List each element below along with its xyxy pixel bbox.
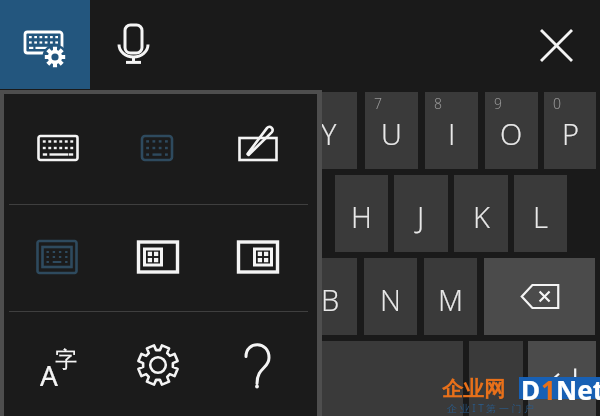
staticText: Y	[321, 114, 337, 153]
staticText: 8	[434, 94, 442, 113]
button[interactable]: N	[364, 258, 417, 335]
staticText: H	[351, 197, 372, 236]
button[interactable]: K	[454, 175, 508, 252]
button[interactable]: Touch keyboard	[10, 108, 106, 188]
staticText: N	[380, 280, 401, 319]
staticText: P	[562, 114, 579, 153]
button[interactable]: B	[304, 258, 357, 335]
button[interactable]: Backspace	[484, 258, 595, 335]
button[interactable]: Space	[300, 341, 463, 416]
staticText: B	[321, 280, 340, 319]
button[interactable]: Symbols	[469, 341, 523, 416]
staticText: 7	[374, 94, 382, 113]
button[interactable]: Handwriting	[210, 107, 306, 187]
button[interactable]: Language	[11, 327, 107, 407]
staticText: 企业网	[442, 376, 505, 402]
button[interactable]: J	[394, 175, 448, 252]
button[interactable]: Y	[300, 92, 357, 169]
button[interactable]: Dock left	[110, 217, 206, 297]
button[interactable]: Dock right	[210, 217, 306, 297]
staticText: Net	[556, 372, 600, 407]
staticText: M	[438, 280, 464, 319]
button[interactable]: Settings	[110, 325, 206, 405]
button[interactable]: Enter	[528, 341, 596, 416]
staticText: O	[500, 114, 523, 153]
staticText: 9	[494, 94, 502, 113]
button[interactable]: 9	[485, 92, 538, 169]
staticText: J	[417, 197, 425, 236]
button[interactable]: 8	[425, 92, 478, 169]
button[interactable]: 7	[365, 92, 418, 169]
button[interactable]: Thumb keyboard	[109, 108, 205, 188]
button[interactable]: Help	[210, 325, 306, 405]
button[interactable]: M	[424, 258, 477, 335]
staticText: 企 业 I T 第 一 门 户	[447, 401, 535, 415]
staticText: K	[473, 197, 490, 236]
staticText: U	[381, 114, 402, 153]
staticText: L	[533, 197, 548, 236]
staticText: I	[448, 114, 456, 153]
button[interactable]: Close	[516, 0, 600, 89]
staticText: 1	[541, 372, 556, 407]
button[interactable]: Keyboard settings	[0, 0, 90, 89]
button[interactable]: Voice input	[90, 0, 180, 89]
button[interactable]: Floating keyboard	[9, 217, 105, 297]
staticText: 字	[55, 346, 77, 374]
button[interactable]: L	[514, 175, 567, 252]
button[interactable]: 0	[544, 92, 596, 169]
staticText: A	[40, 356, 58, 394]
staticText: 0	[553, 94, 561, 113]
staticText: D	[521, 372, 541, 407]
button[interactable]: H	[335, 175, 388, 252]
